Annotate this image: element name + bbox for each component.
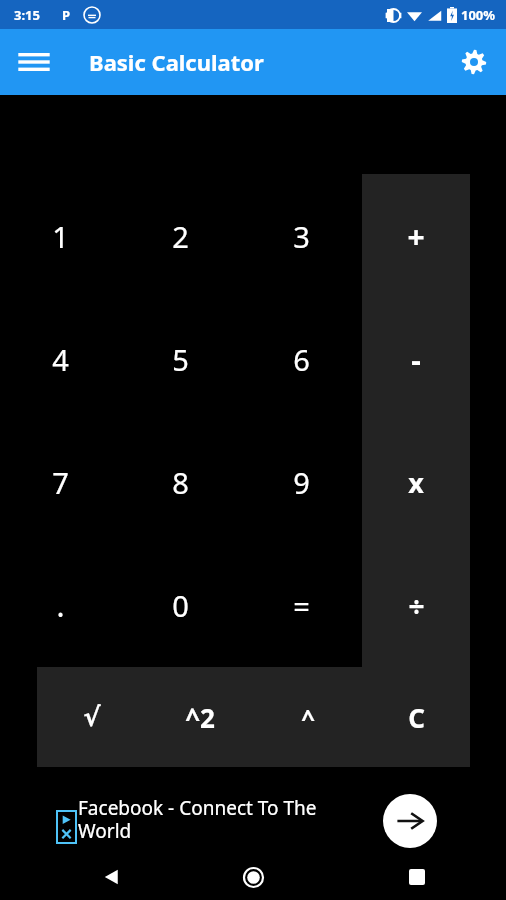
staticText: 9 [293,463,310,502]
staticText: x [408,464,424,501]
staticText: ^ [301,701,315,734]
button[interactable]: 8 [120,421,241,544]
staticText: Facebook - Connect To The World [78,795,368,844]
staticText: 1 [52,217,69,256]
staticText: 3 [293,217,310,256]
button[interactable]: 1 [0,174,120,298]
staticText: ^2 [185,700,215,735]
button[interactable]: Recent apps [393,854,441,900]
button[interactable]: Facebook - Connect To The World [0,788,506,854]
button[interactable]: 4 [0,298,120,421]
button[interactable]: = [241,544,362,667]
button[interactable]: 3 [241,174,362,298]
button[interactable]: Settings [450,38,498,86]
staticText: + [407,216,425,257]
button[interactable]: - [362,298,470,421]
button[interactable]: 0 [120,544,241,667]
button[interactable]: Open navigation menu [10,38,58,86]
staticText: 8 [172,463,189,502]
button[interactable]: ^ [254,667,362,767]
staticText: - [411,339,421,380]
button[interactable]: ^2 [146,667,254,767]
button[interactable]: 5 [120,298,241,421]
button[interactable]: Back [88,854,136,900]
button[interactable]: C [362,667,470,767]
staticText: 4 [52,340,69,379]
button[interactable]: √ [37,667,146,767]
staticText: 7 [52,463,69,502]
staticText: ÷ [408,587,425,625]
staticText: 6 [293,340,310,379]
button[interactable]: 2 [120,174,241,298]
staticText: 0 [172,586,189,625]
staticText: √ [83,702,101,732]
staticText: . [56,585,65,626]
staticText: Basic Calculator [89,47,264,77]
staticText: P [62,6,71,24]
button[interactable]: + [362,174,470,298]
button[interactable]: Home [229,854,277,900]
staticText: = [293,586,310,625]
button[interactable]: x [362,421,470,544]
button[interactable]: 6 [241,298,362,421]
button[interactable]: 9 [241,421,362,544]
button[interactable]: ÷ [362,544,470,667]
button[interactable]: Open ad [383,794,437,848]
button[interactable]: . [0,544,120,667]
staticText: 5 [172,340,189,379]
staticText: 2 [172,217,189,256]
button[interactable]: 7 [0,421,120,544]
staticText: C [408,700,425,735]
staticText: 3:15 [14,6,40,24]
staticText: 100% [461,6,496,24]
